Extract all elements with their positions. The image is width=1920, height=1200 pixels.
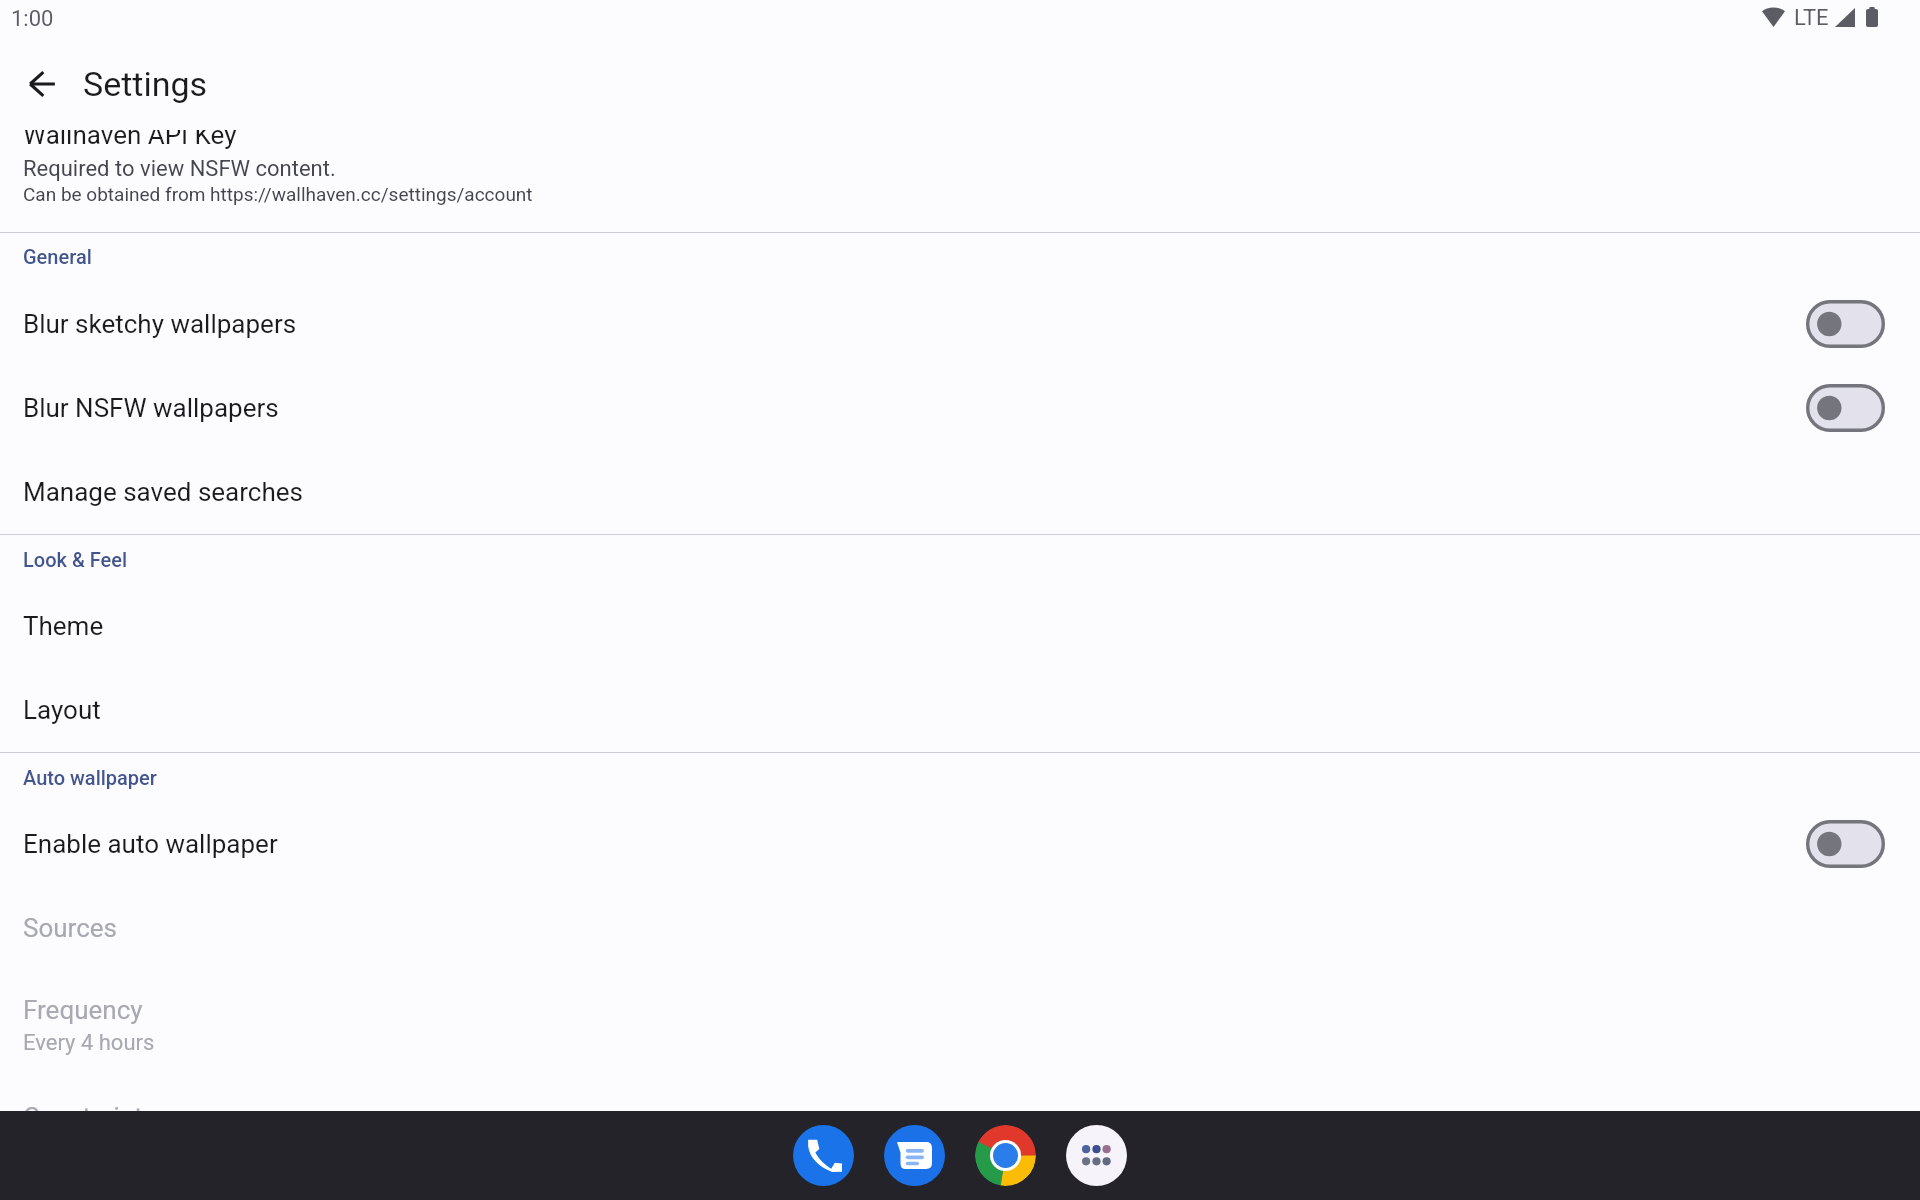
staticText: Layout xyxy=(23,695,101,725)
staticText: General xyxy=(23,245,92,268)
button[interactable]: Enable auto wallpaper xyxy=(0,760,1920,844)
staticText: Look & Feel xyxy=(23,548,128,571)
staticText: Wallhaven API Key xyxy=(23,120,237,150)
staticText: Frequency xyxy=(23,995,143,1025)
staticText: Blur sketchy wallpapers xyxy=(23,309,297,339)
staticText: Can be obtained from https://wallhaven.c… xyxy=(23,183,533,205)
button[interactable]: Wallhaven API Key xyxy=(0,100,1920,214)
button[interactable]: All apps xyxy=(1066,1125,1127,1186)
staticText: Blur NSFW wallpapers xyxy=(23,393,279,423)
staticText: Every 4 hours xyxy=(23,1030,155,1056)
button[interactable]: Chrome xyxy=(975,1125,1036,1186)
staticText: 1:00 xyxy=(11,6,54,32)
button[interactable]: Phone xyxy=(793,1125,854,1186)
staticText: Required to view NSFW content. xyxy=(23,156,336,182)
button[interactable]: Sources xyxy=(0,844,1920,928)
button[interactable]: Frequency xyxy=(0,928,1920,1012)
staticText: Manage saved searches xyxy=(23,477,303,507)
staticText: Constraints xyxy=(23,1102,157,1132)
staticText: Auto wallpaper xyxy=(23,766,157,789)
button[interactable]: Blur sketchy wallpapers xyxy=(0,240,1920,324)
button[interactable]: Layout xyxy=(0,626,1920,710)
staticText: LTE xyxy=(1794,5,1829,31)
staticText: Settings xyxy=(83,64,208,104)
button[interactable]: Messages xyxy=(884,1125,945,1186)
button[interactable]: Constraints xyxy=(0,1012,1920,1096)
staticText: Theme xyxy=(23,611,104,641)
staticText: Sources xyxy=(23,913,117,943)
staticText: Enable auto wallpaper xyxy=(23,829,278,859)
button[interactable]: Manage saved searches xyxy=(0,408,1920,492)
button[interactable]: Theme xyxy=(0,542,1920,626)
button[interactable]: Blur NSFW wallpapers xyxy=(0,324,1920,408)
button[interactable]: Back xyxy=(18,60,66,108)
